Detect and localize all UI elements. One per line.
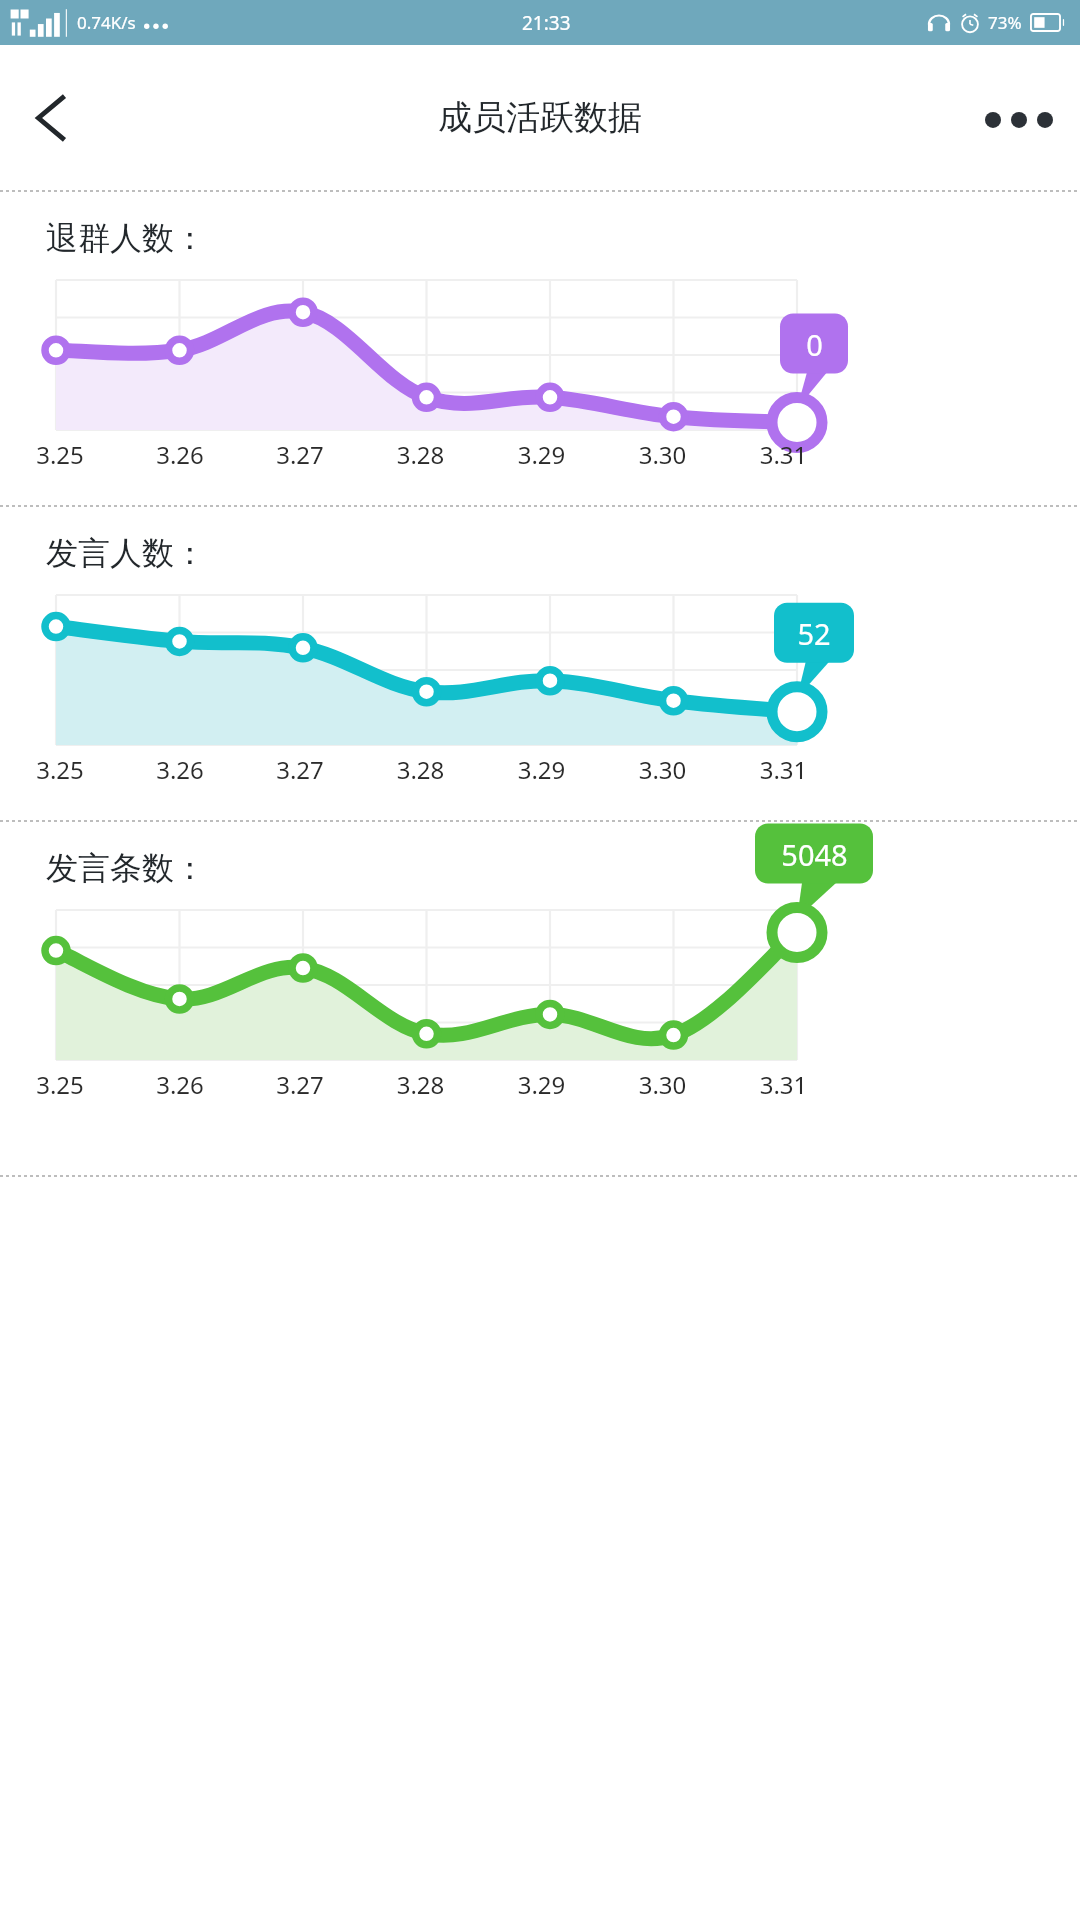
staticText: 3.25	[0, 438, 120, 471]
staticText: 3.28	[360, 1068, 481, 1101]
staticText: 3.25	[0, 753, 120, 786]
staticText: 发言条数：	[46, 848, 206, 888]
staticText: 52	[797, 614, 831, 653]
staticText: 成员活跃数据	[438, 96, 642, 139]
staticText: 3.31	[723, 438, 844, 471]
staticText: 5048	[781, 835, 848, 874]
staticText: 3.27	[240, 1068, 360, 1101]
staticText: 3.26	[120, 438, 240, 471]
button[interactable]: 退群人数：	[0, 192, 1080, 505]
staticText: 3.31	[723, 1068, 844, 1101]
staticText: 3.28	[360, 753, 481, 786]
staticText: 73%	[988, 11, 1022, 34]
staticText: 3.29	[481, 753, 602, 786]
button[interactable]: 发言人数：	[0, 507, 1080, 820]
staticText: 3.30	[602, 1068, 723, 1101]
staticText: 3.29	[481, 1068, 602, 1101]
staticText: 3.26	[120, 1068, 240, 1101]
staticText: 3.25	[0, 1068, 120, 1101]
staticText: 3.27	[240, 753, 360, 786]
staticText: 3.30	[602, 753, 723, 786]
staticText: 21:33	[522, 10, 571, 36]
staticText: 3.30	[602, 438, 723, 471]
staticText: 3.29	[481, 438, 602, 471]
staticText: 0	[806, 325, 823, 364]
staticText: 3.27	[240, 438, 360, 471]
staticText: 发言人数：	[46, 533, 206, 573]
button[interactable]: More options	[976, 86, 1062, 150]
button[interactable]: Back	[4, 76, 88, 160]
staticText: 3.26	[120, 753, 240, 786]
staticText: 3.28	[360, 438, 481, 471]
staticText: 退群人数：	[46, 218, 206, 258]
button[interactable]: 发言条数：	[0, 822, 1080, 1135]
staticText: 0.74K/s	[77, 11, 136, 34]
staticText: 3.31	[723, 753, 844, 786]
